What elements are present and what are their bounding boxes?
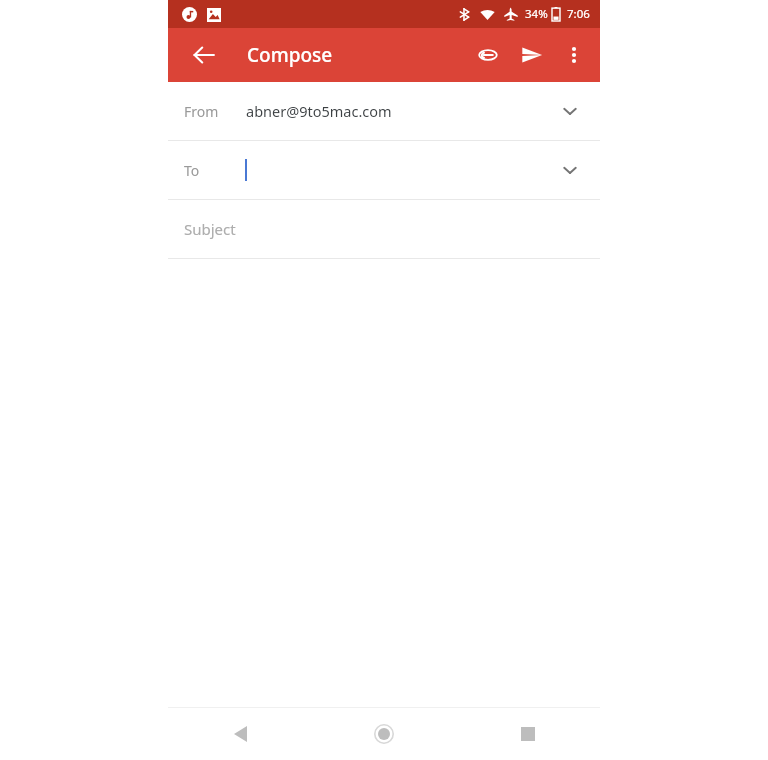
button[interactable]: Expand from — [550, 91, 590, 131]
staticText: 7:06 — [567, 6, 590, 22]
staticText: Subject — [184, 219, 236, 239]
staticText: 34% — [525, 6, 548, 22]
staticText: Compose — [247, 42, 333, 68]
button[interactable]: Attach file — [466, 33, 510, 77]
staticText: From — [184, 102, 219, 121]
button[interactable]: Navigate up — [182, 33, 226, 77]
button[interactable]: Recent apps — [456, 708, 600, 760]
button[interactable]: More options — [554, 35, 594, 75]
button[interactable]: Back — [168, 708, 312, 760]
button[interactable]: From — [168, 82, 600, 140]
staticText: abner@9to5mac.com — [246, 101, 392, 121]
button[interactable]: Subject — [168, 200, 600, 258]
button[interactable]: Home — [312, 708, 456, 760]
staticText: To — [184, 161, 200, 180]
button[interactable]: Send — [510, 33, 554, 77]
button[interactable]: To — [168, 141, 600, 199]
button[interactable]: Expand recipients — [550, 150, 590, 190]
